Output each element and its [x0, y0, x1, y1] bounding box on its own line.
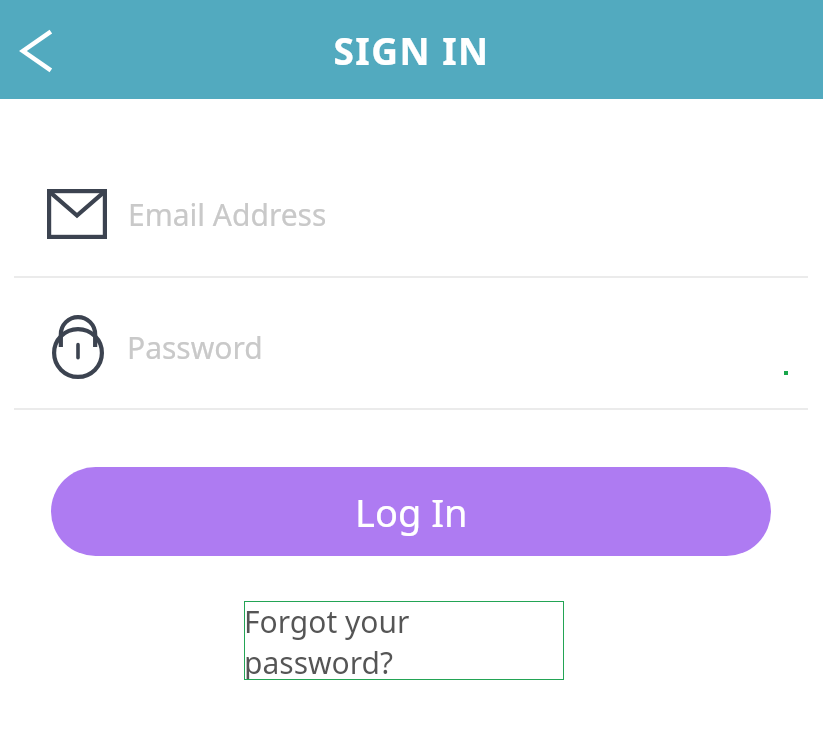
button[interactable]: Back: [6, 21, 64, 79]
button[interactable]: Forgot your password?: [244, 601, 564, 680]
button[interactable]: Email Address: [0, 170, 823, 258]
staticText: Password: [127, 327, 263, 368]
staticText: SIGN IN: [333, 25, 490, 75]
staticText: Email Address: [128, 194, 327, 235]
staticText: Log In: [355, 486, 468, 538]
button[interactable]: Log In: [51, 467, 771, 556]
button[interactable]: Password: [0, 303, 823, 391]
staticText: Forgot your password?: [244, 601, 564, 680]
